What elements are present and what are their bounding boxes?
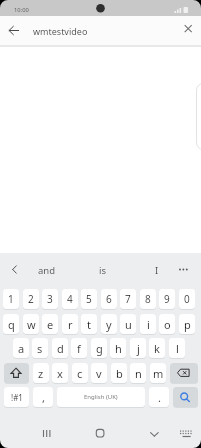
button[interactable]: h [110, 338, 126, 358]
staticText: 5 [86, 292, 92, 306]
button[interactable]: o [159, 314, 175, 334]
button[interactable]: y [101, 314, 117, 334]
button[interactable]: p [179, 314, 195, 334]
staticText: 1 [8, 292, 14, 306]
button[interactable]: 1 [3, 289, 19, 309]
staticText: 8 [145, 292, 151, 306]
staticText: u [125, 317, 132, 332]
button[interactable]: 0 [179, 289, 195, 309]
button[interactable]: e [42, 314, 58, 334]
button[interactable]: 2 [23, 289, 39, 309]
button[interactable]: d [52, 338, 68, 358]
button[interactable]: u [120, 314, 136, 334]
staticText: d [57, 341, 64, 356]
staticText: English (UK) [84, 393, 118, 401]
staticText: 3 [47, 292, 53, 306]
staticText: , [42, 390, 45, 405]
staticText: j [137, 341, 140, 356]
staticText: a [18, 341, 25, 356]
button[interactable]: 3 [42, 289, 58, 309]
button[interactable]: , [33, 387, 53, 407]
button[interactable]: j [130, 338, 146, 358]
staticText: . [158, 390, 161, 405]
staticText: v [96, 366, 102, 381]
staticText: !#1 [11, 392, 23, 403]
button[interactable]: b [111, 363, 127, 383]
button[interactable]: 7 [120, 289, 136, 309]
staticText: 0 [184, 292, 190, 306]
button[interactable] [32, 421, 62, 446]
button[interactable]: w [23, 314, 39, 334]
staticText: w [27, 317, 36, 332]
staticText: f [77, 341, 81, 356]
button[interactable]: n [130, 363, 146, 383]
staticText: x [57, 366, 63, 381]
staticText: q [8, 317, 15, 332]
button[interactable] [179, 19, 198, 38]
button[interactable]: 5 [81, 289, 97, 309]
button[interactable] [139, 421, 169, 446]
staticText: i [147, 317, 150, 332]
staticText: p [184, 317, 191, 332]
button[interactable] [172, 258, 196, 282]
button[interactable]: s [32, 338, 48, 358]
staticText: 2 [28, 292, 34, 306]
button[interactable] [4, 20, 24, 40]
button[interactable]: 8 [140, 289, 156, 309]
button[interactable]: 6 [101, 289, 117, 309]
button[interactable]: t [81, 314, 97, 334]
staticText: 7 [125, 292, 131, 306]
button[interactable]: and [24, 258, 70, 282]
staticText: and [38, 264, 56, 277]
staticText: m [153, 366, 164, 381]
button[interactable] [173, 387, 198, 407]
button[interactable] [85, 421, 115, 446]
button[interactable]: i [140, 314, 156, 334]
button[interactable] [170, 363, 198, 383]
button[interactable]: c [72, 363, 88, 383]
button[interactable]: . [149, 387, 169, 407]
staticText: wmtestvideo [33, 25, 88, 37]
button[interactable]: 4 [62, 289, 78, 309]
staticText: e [47, 317, 54, 332]
button[interactable]: 9 [159, 289, 175, 309]
staticText: 6 [106, 292, 112, 306]
button[interactable]: l [169, 338, 185, 358]
button[interactable]: r [62, 314, 78, 334]
staticText: n [135, 366, 142, 381]
staticText: is [99, 264, 107, 277]
staticText: y [106, 317, 112, 332]
staticText: o [164, 317, 171, 332]
button[interactable]: z [33, 363, 49, 383]
button[interactable]: x [52, 363, 68, 383]
staticText: t [87, 317, 91, 332]
staticText: c [77, 366, 83, 381]
button[interactable]: g [91, 338, 107, 358]
staticText: 4 [67, 292, 73, 306]
button[interactable] [176, 421, 198, 446]
button[interactable]: a [13, 338, 29, 358]
button[interactable] [2, 258, 26, 282]
staticText: l [176, 341, 179, 356]
staticText: k [154, 341, 160, 356]
staticText: r [68, 317, 73, 332]
button[interactable]: f [71, 338, 87, 358]
staticText: 10:00 [14, 6, 29, 14]
staticText: s [37, 341, 43, 356]
button[interactable]: I [134, 258, 180, 282]
staticText: g [96, 341, 103, 356]
button[interactable] [57, 387, 145, 407]
button[interactable]: English (UK) [57, 387, 145, 407]
staticText: h [115, 341, 122, 356]
button[interactable] [4, 363, 29, 383]
button[interactable]: m [150, 363, 166, 383]
button[interactable]: !#1 [4, 387, 29, 407]
staticText: I [155, 264, 159, 277]
button[interactable]: v [91, 363, 107, 383]
button[interactable]: q [3, 314, 19, 334]
button[interactable]: k [149, 338, 165, 358]
staticText: 9 [164, 292, 170, 306]
staticText: z [38, 366, 44, 381]
button[interactable]: is [80, 258, 126, 282]
staticText: b [116, 366, 123, 381]
